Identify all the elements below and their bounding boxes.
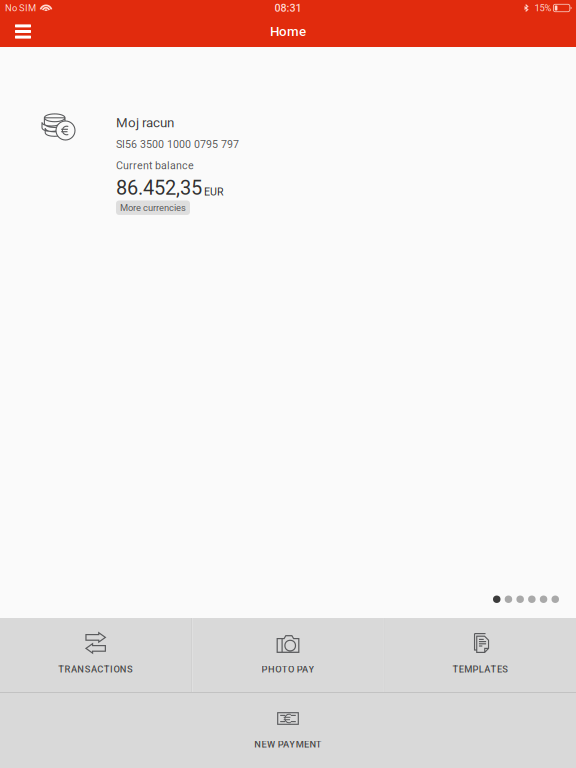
staticText: 86.452,35 [116,177,202,199]
button[interactable]: PHOTO PAY [192,618,384,692]
button[interactable]: TRANSACTIONS [0,618,191,692]
staticText: Moj racun [116,115,174,130]
staticText: TEMPLATES [452,664,508,675]
staticText: No SIM [5,3,36,13]
button[interactable]: Moj racun [0,47,576,215]
staticText: More currencies [120,202,186,213]
staticText: Current balance [116,159,194,172]
button[interactable]: NEW PAYMENT [0,693,576,768]
staticText: EUR [204,186,224,198]
staticText: Home [270,24,306,39]
staticText: 08:31 [274,2,301,14]
button[interactable]: TEMPLATES [385,618,576,692]
staticText: SI56 3500 1000 0795 797 [116,138,239,150]
staticText: NEW PAYMENT [254,739,322,750]
staticText: 15% [534,3,551,13]
button[interactable]: Menu [0,16,46,47]
staticText: PHOTO PAY [262,664,314,675]
staticText: TRANSACTIONS [58,664,133,675]
